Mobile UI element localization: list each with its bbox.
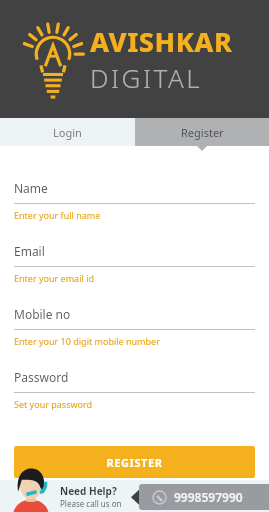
staticText: Register (181, 125, 224, 140)
staticText: 9998597990 (174, 489, 243, 505)
staticText: AVISHKAR (90, 23, 233, 60)
button[interactable]: Password (14, 369, 255, 432)
staticText: REGISTER (106, 455, 163, 470)
staticText: DIGITAL (90, 60, 203, 95)
button[interactable]: Email (14, 243, 255, 306)
staticText: Password (14, 369, 69, 385)
button[interactable]: Need Help? (0, 462, 269, 512)
button[interactable]: Call 9998597990 (139, 484, 269, 510)
staticText: Name (14, 180, 48, 196)
staticText: Enter your full name (14, 209, 101, 221)
button[interactable]: Name (14, 180, 255, 243)
button[interactable]: Login (0, 118, 135, 146)
staticText: Login (53, 125, 82, 140)
staticText: Mobile no (14, 306, 71, 322)
staticText: Set your password (14, 398, 93, 410)
staticText: Need Help? (60, 484, 117, 498)
staticText: Enter your email id (14, 272, 94, 284)
button[interactable]: REGISTER (14, 446, 255, 478)
staticText: Email (14, 243, 45, 259)
button[interactable]: Register (135, 118, 269, 146)
staticText: Please call us on (60, 498, 122, 509)
button[interactable]: Mobile no (14, 306, 255, 369)
staticText: Enter your 10 digit mobile number (14, 335, 160, 347)
